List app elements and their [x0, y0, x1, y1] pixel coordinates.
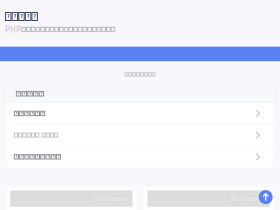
- button[interactable]: Article preview: [143, 187, 274, 210]
- button[interactable]: [8, 146, 272, 167]
- staticText: PHP: [5, 24, 21, 35]
- button[interactable]: Back to top: [259, 191, 272, 204]
- staticText: No Thumbnail: [231, 195, 264, 202]
- staticText: No Thumbnail: [94, 195, 127, 202]
- button[interactable]: Article preview: [6, 187, 137, 210]
- button[interactable]: [8, 125, 272, 146]
- button[interactable]: [8, 103, 272, 124]
